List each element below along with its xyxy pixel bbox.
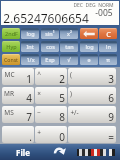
staticText: x²	[67, 30, 72, 37]
staticText: .	[29, 130, 32, 143]
button[interactable]: tan	[60, 41, 78, 52]
staticText: C	[106, 29, 111, 39]
button[interactable]: MS	[2, 106, 34, 123]
staticText: ×	[37, 89, 41, 98]
button[interactable]: )	[68, 87, 116, 104]
staticText: 2.65247606654	[3, 10, 89, 26]
staticText: 1/x	[26, 56, 35, 63]
button[interactable]: ×	[35, 87, 67, 104]
staticText: Exp	[45, 56, 55, 63]
button[interactable]: MC	[2, 68, 34, 85]
staticText: ə	[87, 56, 91, 63]
staticText: π	[106, 56, 110, 63]
staticText: 9	[108, 110, 114, 123]
staticText: log	[85, 43, 94, 50]
staticText: 2	[59, 72, 65, 85]
button[interactable]: Redo	[52, 145, 68, 160]
button[interactable]: (	[68, 68, 116, 85]
button[interactable]: .	[2, 126, 34, 143]
staticText: Int	[26, 43, 34, 50]
staticText: Hyp	[6, 43, 17, 50]
button[interactable]: =	[68, 126, 116, 143]
button[interactable]: log	[80, 41, 98, 52]
button[interactable]: cos	[41, 41, 59, 52]
button[interactable]: MR	[2, 87, 34, 104]
button[interactable]: π	[99, 54, 117, 65]
staticText: 3	[108, 72, 114, 85]
staticText: 8	[59, 110, 65, 123]
button[interactable]: Const	[2, 54, 20, 65]
staticText: 1	[26, 72, 32, 85]
staticText: )	[70, 89, 72, 98]
button[interactable]: Int	[21, 41, 39, 52]
staticText: 7	[26, 110, 32, 123]
button[interactable]: +	[35, 126, 67, 143]
button[interactable]: +/-	[68, 106, 116, 123]
button[interactable]: log	[21, 28, 39, 39]
staticText: log	[26, 30, 35, 37]
staticText: =	[108, 130, 114, 143]
button[interactable]: C	[99, 28, 117, 39]
button[interactable]: Hyp	[2, 41, 20, 52]
staticText: −	[37, 108, 41, 117]
button[interactable]: ^	[35, 68, 67, 85]
staticText: MS	[4, 108, 14, 117]
staticText: 2ndF	[5, 30, 18, 37]
staticText: (	[70, 70, 72, 79]
button[interactable]: sin¹	[41, 28, 59, 39]
staticText: File	[16, 147, 30, 158]
staticText: Const	[4, 56, 18, 63]
button[interactable]: 2ndF	[2, 28, 20, 39]
staticText: -005	[95, 7, 113, 19]
staticText: 6	[108, 91, 114, 104]
button[interactable]: x²	[60, 28, 78, 39]
staticText: 5	[59, 91, 65, 104]
button[interactable]: 1/x	[21, 54, 39, 65]
staticText: MC	[4, 70, 15, 79]
button[interactable]: Backspace	[80, 28, 98, 39]
staticText: DEC DEG NORM	[73, 2, 114, 9]
button[interactable]: ln	[99, 41, 117, 52]
staticText: +	[37, 128, 41, 137]
staticText: √	[67, 57, 71, 63]
button[interactable]: −	[35, 106, 67, 123]
staticText: 4	[26, 91, 32, 104]
button[interactable]: ə	[80, 54, 98, 65]
staticText: sin¹	[45, 30, 55, 37]
button[interactable]: File	[16, 147, 30, 158]
staticText: +/-	[70, 108, 79, 117]
button[interactable]: Exp	[41, 54, 59, 65]
button[interactable]: √	[60, 54, 78, 65]
staticText: 0	[59, 130, 65, 143]
staticText: tan	[65, 43, 74, 50]
staticText: ^	[37, 70, 41, 79]
button[interactable]: Input panel	[77, 149, 115, 156]
staticText: cos	[46, 43, 55, 50]
staticText: MR	[4, 89, 14, 98]
staticText: ln	[106, 43, 111, 50]
